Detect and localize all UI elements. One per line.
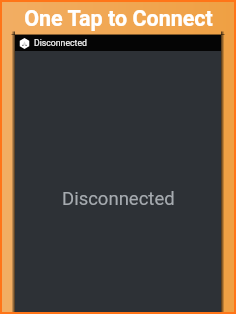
staticText: One Tap to Connect xyxy=(24,6,213,31)
staticText: Disconnected xyxy=(62,188,175,210)
staticText: Disconnected xyxy=(34,38,87,48)
button[interactable]: VPN status xyxy=(15,35,221,51)
other: VPN status xyxy=(19,38,30,49)
